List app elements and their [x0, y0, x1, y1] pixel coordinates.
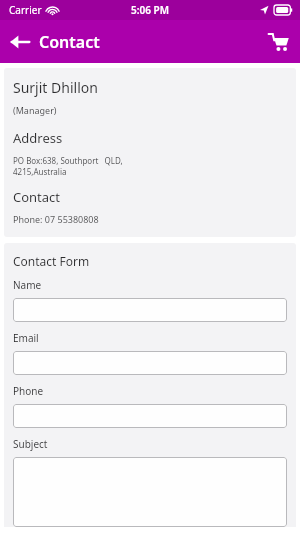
staticText: PO Box:638, Southport QLD,	[13, 155, 123, 166]
button[interactable]: Text input	[13, 351, 287, 375]
staticText: 5:06 PM	[131, 3, 169, 17]
button[interactable]: Text input	[13, 404, 287, 428]
staticText: 4215,Australia	[13, 166, 67, 177]
staticText: Address	[13, 129, 63, 147]
staticText: Phone: 07 55380808	[13, 213, 99, 225]
staticText: Name	[13, 278, 42, 292]
staticText: (Manager)	[13, 104, 57, 116]
staticText: Carrier	[9, 3, 42, 17]
staticText: Surjit Dhillon	[13, 78, 98, 97]
staticText: Contact Form	[13, 253, 90, 269]
staticText: Contact	[13, 188, 61, 206]
staticText: Subject	[13, 437, 48, 451]
staticText: Email	[13, 331, 39, 345]
button[interactable]: Text input	[13, 298, 287, 322]
staticText: Contact	[39, 31, 100, 53]
button[interactable]: Contact	[0, 25, 110, 59]
button[interactable]: Text input	[13, 457, 287, 527]
staticText: Phone	[13, 384, 44, 398]
button[interactable]: Shopping cart	[256, 25, 300, 59]
